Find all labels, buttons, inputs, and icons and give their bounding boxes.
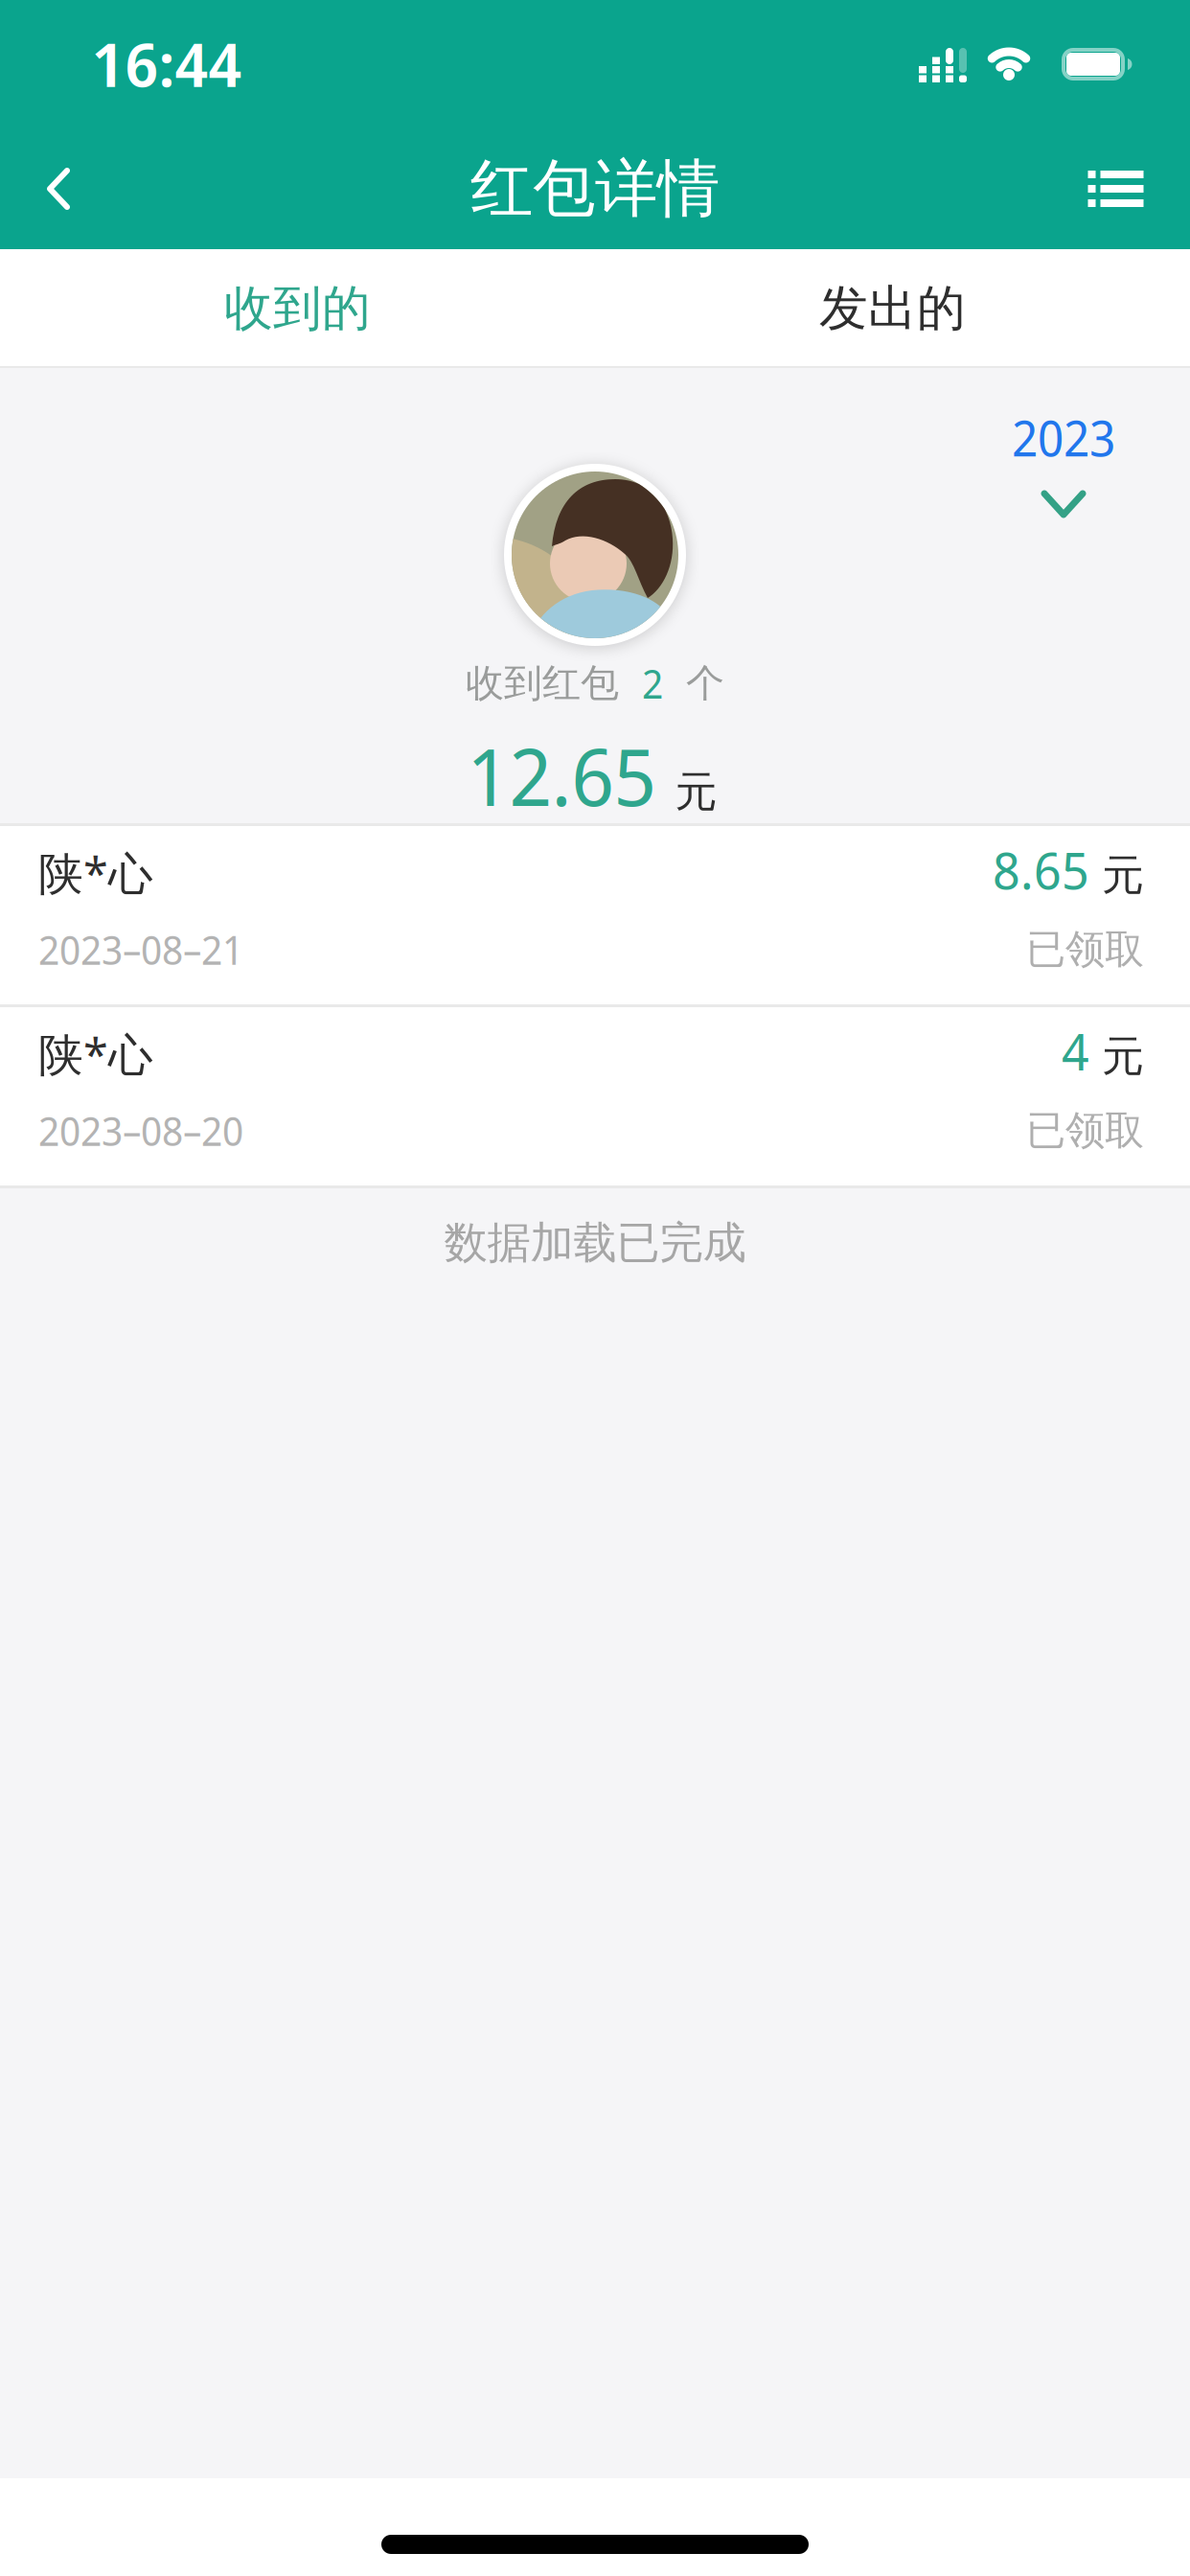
staticText: 2023 (1012, 404, 1115, 471)
staticText: 元 (675, 766, 717, 818)
button[interactable]: 发出的 (595, 250, 1190, 367)
staticText: 陕*心 (38, 843, 153, 902)
staticText: 2023–08–21 (38, 923, 243, 977)
staticText: 已领取 (1026, 925, 1144, 974)
staticText: 数据加载已完成 (444, 1216, 746, 1270)
button[interactable]: 陕*心 (0, 1007, 1190, 1185)
staticText: 12.65 (467, 721, 656, 829)
button[interactable]: Back (0, 149, 109, 229)
staticText: 收到红包 (466, 660, 619, 707)
staticText: 16:44 (92, 21, 242, 105)
staticText: 收到的 (224, 279, 371, 338)
staticText: 2 (642, 656, 663, 710)
staticText: 4 (1062, 1016, 1089, 1085)
staticText: 发出的 (819, 279, 966, 338)
button[interactable]: Records (1050, 151, 1190, 226)
staticText: 元 (1089, 1031, 1144, 1082)
button[interactable]: Year 2023 (1012, 404, 1115, 519)
staticText: 陕*心 (38, 1024, 153, 1083)
button[interactable]: 陕*心 (0, 826, 1190, 1004)
staticText: 个 (686, 660, 724, 707)
staticText: 8.65 (993, 835, 1089, 904)
staticText: 已领取 (1026, 1106, 1144, 1155)
staticText: 红包详情 (470, 150, 720, 227)
staticText: 元 (1089, 849, 1144, 901)
staticText: 2023–08–20 (38, 1104, 243, 1158)
button[interactable]: 收到的 (0, 250, 595, 367)
